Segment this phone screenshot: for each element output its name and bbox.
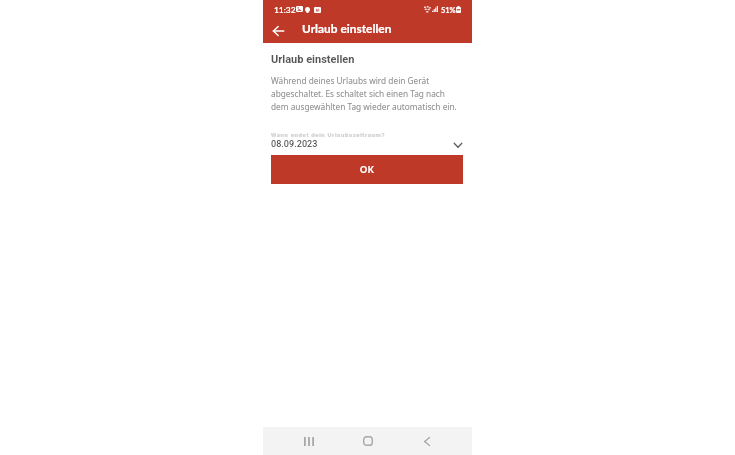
- button[interactable]: Wann endet dein Urlaubszeitraum?: [271, 131, 463, 155]
- button[interactable]: Home: [355, 429, 380, 453]
- staticText: 11:32: [274, 5, 296, 15]
- staticText: 08.09.2023: [271, 139, 318, 150]
- staticText: Urlaub einstellen: [271, 53, 355, 66]
- button[interactable]: Recent apps: [296, 429, 321, 453]
- staticText: Wann endet dein Urlaubszeitraum?: [271, 131, 386, 138]
- staticText: Während deines Urlaubs wird dein Gerät a…: [271, 75, 463, 112]
- staticText: Urlaub einstellen: [302, 21, 392, 35]
- button[interactable]: Back: [414, 429, 439, 453]
- staticText: 51%: [441, 6, 456, 15]
- staticText: OK: [360, 164, 375, 175]
- button[interactable]: OK: [271, 155, 463, 184]
- button[interactable]: Back: [263, 20, 293, 43]
